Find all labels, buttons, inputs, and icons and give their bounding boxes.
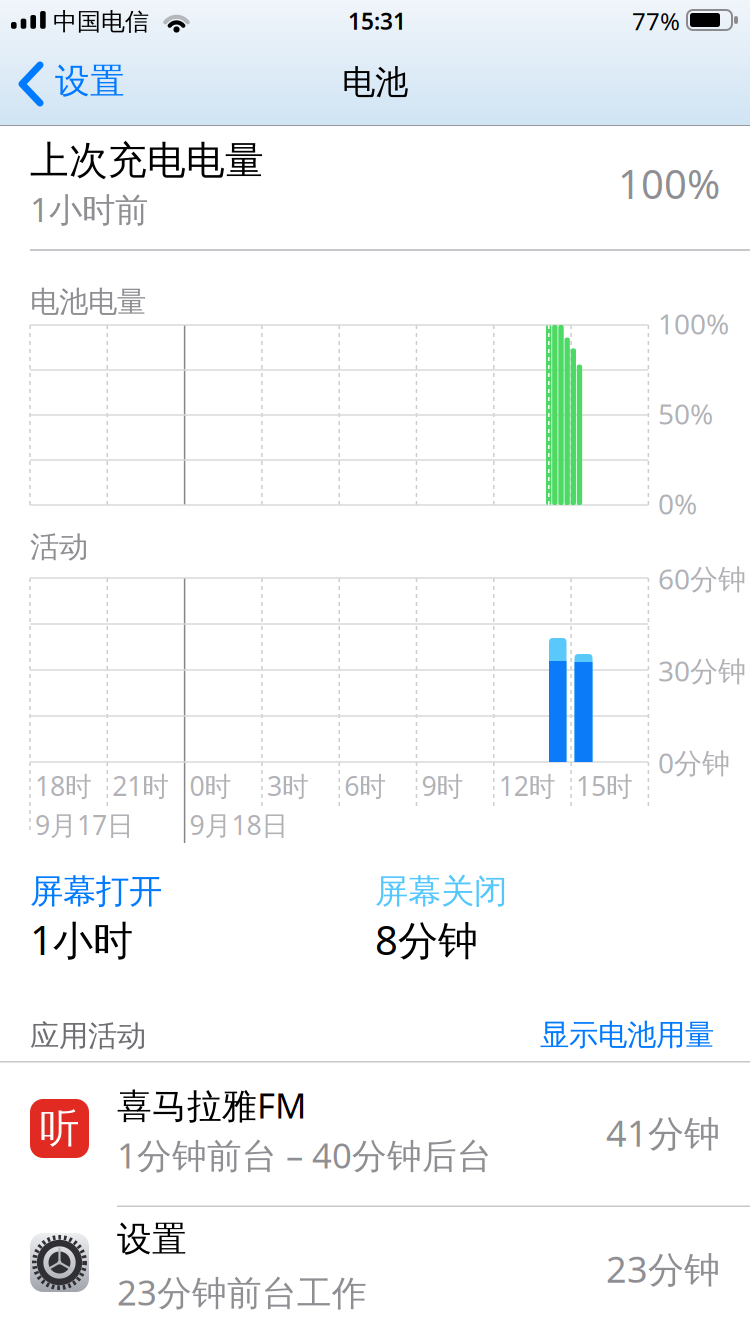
staticText: 屏幕关闭 [375, 871, 507, 912]
staticText: 上次充电电量 [30, 137, 264, 184]
staticText: 电池 [342, 62, 408, 103]
button[interactable]: 返回设置 [0, 40, 140, 126]
staticText: 活动 [30, 529, 88, 565]
staticText: 中国电信 [53, 7, 149, 36]
staticText: 喜马拉雅FM [117, 1082, 306, 1128]
staticText: 60分钟 [658, 560, 746, 597]
staticText: 1小时 [30, 913, 133, 966]
staticText: 9月18日 [190, 807, 289, 842]
staticText: 听 [39, 1104, 79, 1153]
staticText: 100% [658, 305, 729, 342]
staticText: 3时 [267, 768, 309, 803]
staticText: 电池电量 [30, 284, 146, 320]
button[interactable]: 显示电池用量 [540, 1017, 714, 1053]
staticText: 100% [618, 157, 720, 210]
staticText: 显示电池用量 [540, 1017, 714, 1053]
staticText: 18时 [35, 768, 92, 803]
staticText: 21时 [112, 768, 169, 803]
staticText: 1分钟前台 – 40分钟后台 [117, 1132, 492, 1178]
staticText: 屏幕打开 [30, 871, 162, 912]
staticText: 15时 [576, 768, 633, 803]
staticText: 77% [632, 5, 680, 37]
staticText: 8分钟 [375, 913, 478, 966]
staticText: 23分钟前台工作 [117, 1269, 367, 1315]
staticText: 0时 [190, 768, 232, 803]
staticText: 6时 [344, 768, 386, 803]
staticText: 9时 [421, 768, 463, 803]
staticText: 设置 [55, 60, 125, 103]
staticText: 23分钟 [606, 1245, 720, 1293]
staticText: 50% [658, 395, 713, 432]
staticText: 9月17日 [35, 807, 134, 842]
staticText: 30分钟 [658, 652, 746, 689]
staticText: 应用活动 [30, 1018, 146, 1054]
staticText: 15:31 [348, 6, 406, 36]
button[interactable]: 设置 [0, 1206, 750, 1334]
staticText: 设置 [117, 1218, 187, 1261]
staticText: 1小时前 [30, 187, 148, 231]
staticText: 12时 [499, 768, 556, 803]
button[interactable]: 听 [0, 1062, 750, 1206]
staticText: 0分钟 [658, 744, 730, 781]
staticText: 41分钟 [606, 1109, 720, 1157]
staticText: 0% [658, 485, 697, 522]
